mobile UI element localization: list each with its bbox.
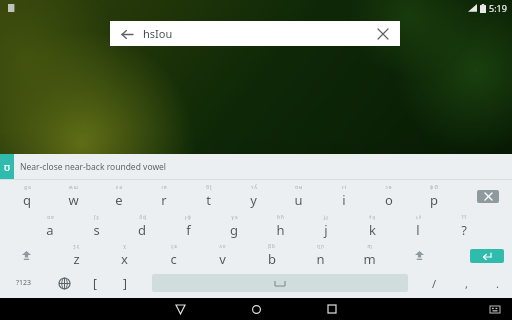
button[interactable]: Shift: [0, 241, 52, 270]
staticText: e: [115, 191, 123, 209]
button[interactable]: ɱ: [345, 241, 394, 270]
button[interactable]: ʍ ɯ: [50, 180, 96, 212]
staticText: v: [219, 250, 226, 268]
button[interactable]: ʌ ʋ: [198, 241, 247, 270]
staticText: ʏ ʎ: [251, 184, 257, 190]
staticText: ʝ ɟ: [324, 214, 328, 220]
button[interactable]: ʒ ʐ: [52, 241, 100, 270]
staticText: i: [342, 191, 346, 209]
staticText: x: [121, 250, 128, 268]
button[interactable]: Space: [152, 274, 408, 292]
button[interactable]: Enter: [470, 249, 504, 263]
button[interactable]: ð ɖ: [119, 212, 165, 241]
staticText: ç ɕ: [171, 243, 177, 249]
staticText: t: [206, 191, 211, 209]
staticText: ɣ ɢ: [231, 214, 238, 220]
staticText: Near-close near-back rounded vowel: [20, 161, 167, 173]
button[interactable]: ɑ ɐ: [27, 212, 73, 241]
staticText: ɑ ɐ: [47, 214, 54, 220]
staticText: β ɓ: [268, 243, 275, 249]
staticText: ʃ ʂ: [94, 214, 99, 220]
staticText: z: [73, 250, 80, 268]
button[interactable]: ɾ ʀ: [141, 180, 186, 212]
staticText: ʊ: [4, 160, 11, 174]
button[interactable]: ɟ ɸ: [165, 212, 211, 241]
button[interactable]: Shift: [394, 241, 444, 270]
button[interactable]: Switch keyboard: [486, 300, 504, 318]
staticText: h: [276, 221, 285, 239]
button[interactable]: ,: [450, 270, 482, 296]
staticText: ɾ ʀ: [161, 184, 167, 190]
staticText: q: [23, 191, 31, 209]
staticText: s: [93, 221, 100, 239]
button[interactable]: ʟ ɬ: [395, 212, 441, 241]
staticText: .: [496, 276, 499, 291]
staticText: d: [138, 221, 146, 239]
staticText: hsIou: [143, 26, 173, 41]
staticText: m: [363, 250, 376, 268]
staticText: l: [416, 221, 420, 239]
button[interactable]: ɪ ɨ: [321, 180, 366, 212]
staticText: ð ɖ: [139, 214, 146, 220]
button[interactable]: .: [482, 270, 512, 296]
button[interactable]: Near-close near-back rounded vowel: [14, 154, 167, 179]
button[interactable]: ɦ ħ: [257, 212, 303, 241]
staticText: w: [68, 191, 79, 209]
staticText: ʔ ʕ: [461, 214, 467, 220]
button[interactable]: ?123: [0, 270, 48, 296]
button[interactable]: Back: [116, 23, 138, 45]
button[interactable]: Change keyboard language: [48, 270, 80, 296]
button[interactable]: Home: [243, 298, 269, 320]
staticText: /: [432, 276, 437, 291]
staticText: ǂ ʞ: [369, 214, 375, 220]
button[interactable]: [: [80, 270, 110, 296]
button[interactable]: ɛ ə: [96, 180, 141, 212]
button[interactable]: χ: [100, 241, 149, 270]
button[interactable]: ɡ ɢ: [4, 180, 50, 212]
button[interactable]: ]: [110, 270, 140, 296]
button[interactable]: ç ɕ: [149, 241, 198, 270]
staticText: k: [369, 221, 376, 239]
button[interactable]: ɔ ɵ: [366, 180, 411, 212]
staticText: p: [430, 191, 438, 209]
button[interactable]: Back: [110, 21, 400, 46]
staticText: ɔ ɵ: [385, 184, 392, 190]
button[interactable]: θ ʈ: [186, 180, 231, 212]
button[interactable]: ʏ ʎ: [231, 180, 276, 212]
button[interactable]: ʊ ʉ: [276, 180, 321, 212]
button[interactable]: Clear: [372, 23, 394, 45]
button[interactable]: ɸ ʘ: [411, 180, 456, 212]
staticText: ʌ ʋ: [219, 243, 226, 249]
button[interactable]: ʃ ʂ: [73, 212, 119, 241]
button[interactable]: ʝ ɟ: [303, 212, 349, 241]
staticText: j: [324, 221, 328, 239]
staticText: [: [93, 275, 97, 291]
button[interactable]: Recents: [319, 298, 345, 320]
button[interactable]: Backspace: [477, 190, 499, 203]
button[interactable]: ʔ ʕ: [441, 212, 487, 241]
button[interactable]: ŋ ɲ: [296, 241, 345, 270]
staticText: ,: [465, 276, 468, 291]
button[interactable]: β ɓ: [247, 241, 296, 270]
staticText: ɪ ɨ: [342, 184, 346, 190]
staticText: ʊ ʉ: [295, 184, 302, 190]
staticText: u: [294, 191, 303, 209]
button[interactable]: ʊ: [0, 154, 14, 179]
staticText: ɟ ɸ: [185, 214, 191, 220]
staticText: ɱ: [367, 243, 372, 249]
staticText: o: [385, 191, 393, 209]
staticText: ʟ ɬ: [416, 214, 421, 220]
staticText: n: [316, 250, 325, 268]
staticText: θ ʈ: [206, 184, 212, 190]
staticText: ŋ ɲ: [317, 243, 324, 249]
staticText: ]: [123, 275, 127, 291]
button[interactable]: ɣ ɢ: [211, 212, 257, 241]
staticText: 5:19: [489, 2, 507, 14]
button[interactable]: ǂ ʞ: [349, 212, 395, 241]
staticText: ɡ ɢ: [24, 184, 31, 190]
staticText: r: [161, 191, 167, 209]
button[interactable]: /: [418, 270, 450, 296]
staticText: f: [186, 221, 191, 239]
button[interactable]: Back: [167, 298, 193, 320]
staticText: ?123: [16, 278, 32, 288]
